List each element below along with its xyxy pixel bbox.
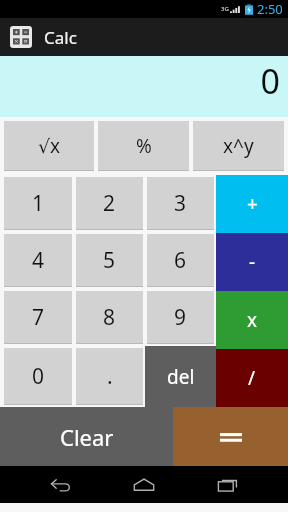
staticText: 3: [174, 189, 187, 218]
staticText: 4: [32, 246, 45, 275]
staticText: 0: [260, 58, 280, 104]
button[interactable]: /: [216, 349, 288, 407]
other: Calc app icon: [10, 26, 32, 48]
button[interactable]: 2: [76, 177, 143, 230]
button[interactable]: √x: [4, 121, 94, 171]
button[interactable]: .: [76, 348, 143, 405]
staticText: 7: [32, 303, 45, 332]
button[interactable]: +: [216, 175, 288, 233]
button[interactable]: x: [216, 291, 288, 349]
staticText: +: [247, 191, 258, 217]
button[interactable]: del: [145, 346, 216, 407]
button[interactable]: 0: [4, 348, 72, 405]
button[interactable]: [173, 407, 288, 466]
staticText: 0: [32, 362, 45, 391]
button[interactable]: 3: [147, 177, 214, 230]
button[interactable]: %: [98, 121, 189, 171]
button[interactable]: 6: [147, 234, 214, 287]
button[interactable]: 8: [76, 291, 143, 344]
button[interactable]: 5: [76, 234, 143, 287]
staticText: .: [107, 362, 113, 391]
staticText: -: [249, 249, 256, 275]
staticText: 8: [103, 303, 116, 332]
button[interactable]: Home: [121, 466, 167, 503]
button[interactable]: Recent apps: [205, 466, 251, 503]
button[interactable]: x^y: [193, 121, 284, 171]
button[interactable]: 1: [4, 177, 72, 230]
button[interactable]: Clear: [0, 407, 173, 466]
staticText: 1: [32, 189, 45, 218]
staticText: del: [167, 364, 195, 390]
staticText: 2:50: [257, 0, 283, 18]
staticText: %: [136, 133, 152, 159]
button[interactable]: -: [216, 233, 288, 291]
staticText: x^y: [223, 133, 254, 159]
staticText: /: [248, 365, 256, 391]
staticText: 5: [103, 246, 116, 275]
button[interactable]: 4: [4, 234, 72, 287]
staticText: x: [247, 307, 258, 333]
button[interactable]: Back: [38, 466, 84, 503]
staticText: Calc: [44, 26, 77, 49]
staticText: 6: [174, 246, 187, 275]
staticText: Clear: [60, 422, 114, 452]
staticText: √x: [38, 133, 61, 159]
button[interactable]: 9: [147, 291, 214, 344]
button[interactable]: 7: [4, 291, 72, 344]
staticText: 9: [174, 303, 187, 332]
staticText: 3G: [221, 5, 229, 13]
staticText: 2: [103, 189, 116, 218]
